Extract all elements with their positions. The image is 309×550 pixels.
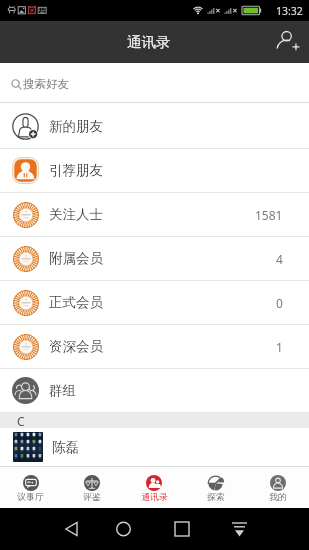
staticText: 关注人士 [49, 206, 103, 223]
button[interactable]: 群组 [0, 369, 309, 412]
button[interactable]: 搜索好友 [0, 63, 309, 103]
button[interactable]: 附属会员 [0, 237, 309, 280]
staticText: 通讯录 [127, 33, 171, 51]
staticText: 附属会员 [49, 250, 103, 267]
button[interactable]: Add friend [265, 21, 309, 63]
staticText: C [17, 413, 25, 428]
staticText: 我的 [269, 492, 287, 503]
button[interactable]: 正式会员 [0, 281, 309, 324]
button[interactable]: 新的朋友 [0, 105, 309, 148]
button[interactable]: 引荐朋友 [0, 149, 309, 192]
button[interactable]: 评鉴 [61, 467, 123, 508]
staticText: 议事厅 [17, 492, 44, 503]
button[interactable]: 通讯录 [123, 467, 185, 508]
staticText: 探索 [207, 492, 225, 503]
staticText: 0 [276, 295, 283, 311]
staticText: 资深会员 [49, 338, 103, 355]
staticText: 搜索好友 [23, 77, 69, 91]
staticText: 通讯录 [141, 492, 168, 503]
staticText: 13:32 [276, 4, 303, 18]
button[interactable]: 议事厅 [0, 467, 61, 508]
button[interactable]: 我的 [247, 467, 309, 508]
button[interactable]: 探索 [185, 467, 247, 508]
button[interactable]: 关注人士 [0, 193, 309, 236]
staticText: 正式会员 [49, 294, 103, 311]
staticText: 1 [276, 339, 283, 355]
staticText: 群组 [49, 382, 76, 399]
staticText: 评鉴 [83, 492, 101, 503]
staticText: 4 [276, 251, 283, 267]
button[interactable]: 陈磊 [0, 428, 309, 466]
staticText: 引荐朋友 [49, 162, 103, 179]
button[interactable]: 资深会员 [0, 325, 309, 368]
staticText: 新的朋友 [49, 118, 103, 135]
staticText: 1581 [255, 207, 283, 223]
staticText: 陈磊 [52, 439, 79, 456]
